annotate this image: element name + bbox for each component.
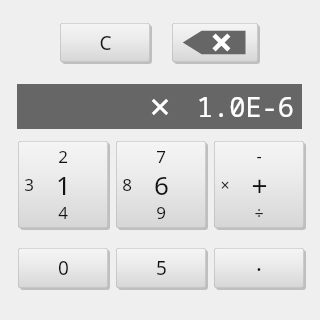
button[interactable]: 7 [116,141,206,228]
staticText: 8 [122,173,132,196]
button[interactable]: 0 [18,248,108,288]
other: Backspace [172,23,258,62]
button[interactable]: Clear entry [17,84,302,129]
staticText: 5 [156,255,167,281]
staticText: 1 [56,167,71,202]
staticText: 2 [58,145,68,168]
staticText: + [251,166,268,204]
staticText: · [256,253,262,283]
button[interactable]: - [214,141,304,228]
button[interactable]: 2 [18,141,108,228]
staticText: C [99,30,112,56]
button[interactable]: 5 [116,248,206,288]
staticText: 3 [24,173,34,196]
staticText: 7 [156,145,166,168]
staticText: 6 [154,167,169,202]
staticText: 1.0E-6 [196,88,294,125]
staticText: 0 [58,255,69,281]
button[interactable]: · [214,248,304,288]
button[interactable] [172,23,258,62]
staticText: 9 [156,201,166,224]
button[interactable]: C [60,23,150,62]
staticText: 4 [58,201,68,224]
staticText: ÷ [254,202,264,224]
staticText: × [220,174,230,196]
staticText: - [256,145,262,167]
